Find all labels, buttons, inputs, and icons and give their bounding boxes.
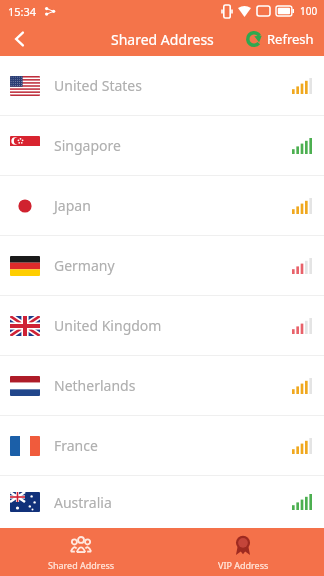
- staticText: Netherlands: [54, 376, 136, 395]
- staticText: Germany: [54, 256, 115, 275]
- button[interactable]: Back: [0, 22, 40, 56]
- button[interactable]: Singapore: [0, 116, 324, 175]
- staticText: United Kingdom: [54, 316, 162, 335]
- staticText: Shared Address: [111, 30, 214, 49]
- button[interactable]: United Kingdom: [0, 296, 324, 355]
- staticText: France: [54, 436, 98, 455]
- button[interactable]: Netherlands: [0, 356, 324, 415]
- staticText: Shared Address: [48, 559, 115, 571]
- button[interactable]: Refresh: [244, 26, 316, 52]
- button[interactable]: United States: [0, 56, 324, 115]
- button[interactable]: Germany: [0, 236, 324, 295]
- staticText: Refresh: [267, 30, 314, 48]
- button[interactable]: Shared Address: [0, 528, 162, 576]
- button[interactable]: France: [0, 416, 324, 475]
- button[interactable]: VIP Address: [162, 528, 324, 576]
- staticText: 15:34: [8, 4, 37, 19]
- button[interactable]: Japan: [0, 176, 324, 235]
- staticText: 100: [300, 4, 318, 18]
- button[interactable]: Australia: [0, 476, 324, 528]
- staticText: VIP Address: [218, 559, 269, 571]
- staticText: Japan: [54, 196, 91, 215]
- staticText: United States: [54, 76, 142, 95]
- staticText: Singapore: [54, 136, 121, 155]
- staticText: Australia: [54, 493, 112, 512]
